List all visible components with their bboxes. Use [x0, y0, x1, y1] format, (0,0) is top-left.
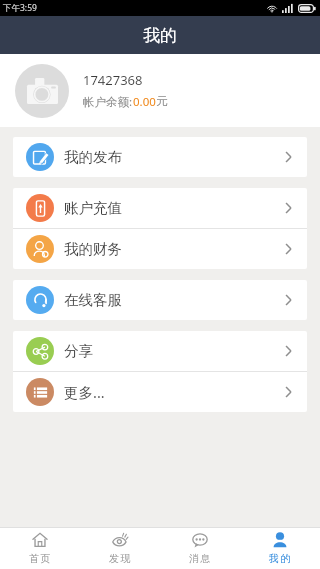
staticText: 我的发布: [64, 148, 122, 166]
button[interactable]: 我的发布: [13, 137, 307, 177]
staticText: 我的: [143, 25, 177, 46]
staticText: 下午3:59: [3, 2, 37, 14]
staticText: 我的财务: [64, 240, 122, 258]
button[interactable]: 消息: [160, 532, 240, 565]
staticText: 元: [156, 94, 168, 108]
staticText: 首页: [29, 552, 52, 565]
button[interactable]: 在线客服: [13, 280, 307, 320]
button[interactable]: 首页: [0, 532, 80, 565]
staticText: 帐户余额:: [83, 94, 133, 110]
button[interactable]: 我的: [240, 532, 320, 565]
staticText: 消息: [189, 552, 212, 565]
staticText: 分享: [64, 342, 93, 360]
button[interactable]: 我的财务: [13, 229, 307, 269]
button[interactable]: 分享: [13, 331, 307, 371]
staticText: 在线客服: [64, 291, 122, 309]
button[interactable]: 账户充值: [13, 188, 307, 228]
button[interactable]: 更多...: [13, 372, 307, 412]
staticText: 更多...: [64, 382, 105, 402]
staticText: 0.00: [133, 94, 156, 110]
staticText: 发现: [109, 552, 132, 565]
button[interactable]: 发现: [80, 532, 160, 565]
staticText: 17427368: [83, 71, 143, 89]
staticText: 账户充值: [64, 199, 122, 217]
staticText: 我的: [269, 552, 292, 565]
